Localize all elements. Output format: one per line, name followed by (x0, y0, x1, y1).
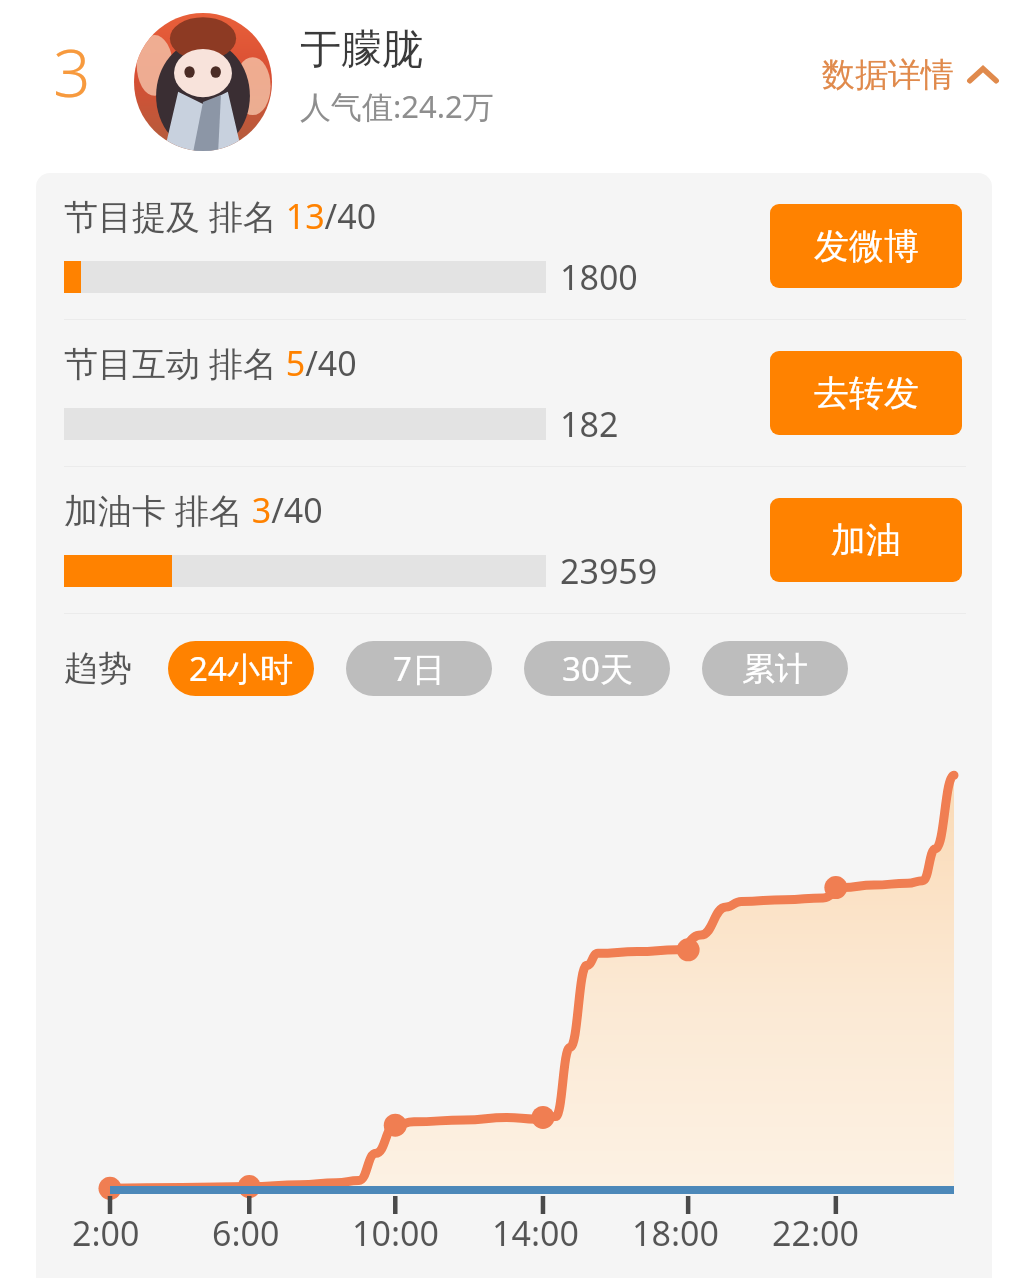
staticText: 22:00 (772, 1210, 859, 1256)
staticText: 18:00 (632, 1210, 719, 1256)
button[interactable]: 加油 (770, 498, 962, 582)
staticText: 10:00 (352, 1210, 439, 1256)
staticText: 3 (53, 26, 91, 116)
staticText: 趋势 (64, 647, 132, 690)
button[interactable]: 30天 (524, 641, 670, 696)
button[interactable]: 发微博 (770, 204, 962, 288)
button[interactable]: 数据详情 (822, 54, 998, 96)
button[interactable]: 24小时 (168, 641, 314, 696)
button[interactable]: 7日 (346, 641, 492, 696)
staticText: 30天 (562, 646, 633, 691)
staticText: 去转发 (814, 371, 919, 415)
staticText: 数据详情 (822, 54, 954, 96)
button[interactable]: Avatar (134, 13, 272, 151)
staticText: 发微博 (814, 224, 919, 268)
staticText: 节目互动 排名 5/40 (64, 340, 357, 386)
staticText: 累计 (742, 648, 808, 690)
staticText: 23959 (560, 548, 658, 594)
staticText: 节目提及 排名 13/40 (64, 193, 377, 239)
staticText: 1800 (560, 254, 638, 300)
staticText: 24小时 (189, 646, 293, 691)
staticText: 14:00 (492, 1210, 579, 1256)
staticText: 7日 (393, 646, 445, 691)
staticText: 6:00 (212, 1210, 280, 1256)
staticText: 182 (560, 401, 619, 447)
staticText: 人气值:24.2万 (300, 85, 494, 127)
staticText: 于朦胧 (300, 24, 423, 76)
button[interactable]: 去转发 (770, 351, 962, 435)
staticText: 加油卡 排名 3/40 (64, 487, 323, 533)
button[interactable]: 累计 (702, 641, 848, 696)
staticText: 加油 (831, 518, 901, 562)
staticText: 2:00 (72, 1210, 140, 1256)
